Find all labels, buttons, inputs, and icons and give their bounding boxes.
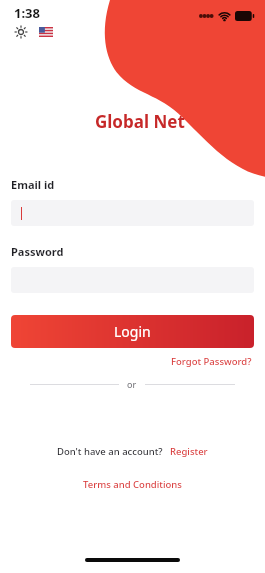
staticText: Global Net	[95, 110, 185, 133]
button[interactable]: Forgot Password?	[171, 355, 252, 368]
staticText: or	[127, 378, 137, 390]
staticText: Email id	[11, 177, 55, 192]
button[interactable]: Terms and Conditions	[83, 478, 182, 491]
staticText: Register	[170, 445, 208, 458]
staticText: Login	[114, 322, 151, 341]
staticText: Don't have an account?	[57, 445, 163, 458]
button[interactable]	[11, 200, 254, 226]
staticText: Terms and Conditions	[83, 478, 182, 491]
staticText: 1:38	[14, 4, 40, 22]
button[interactable]: Login	[11, 315, 254, 348]
other: Home indicator	[85, 558, 180, 562]
staticText: Password	[11, 244, 64, 259]
button[interactable]: Register	[170, 445, 208, 458]
staticText: Forgot Password?	[171, 355, 252, 368]
